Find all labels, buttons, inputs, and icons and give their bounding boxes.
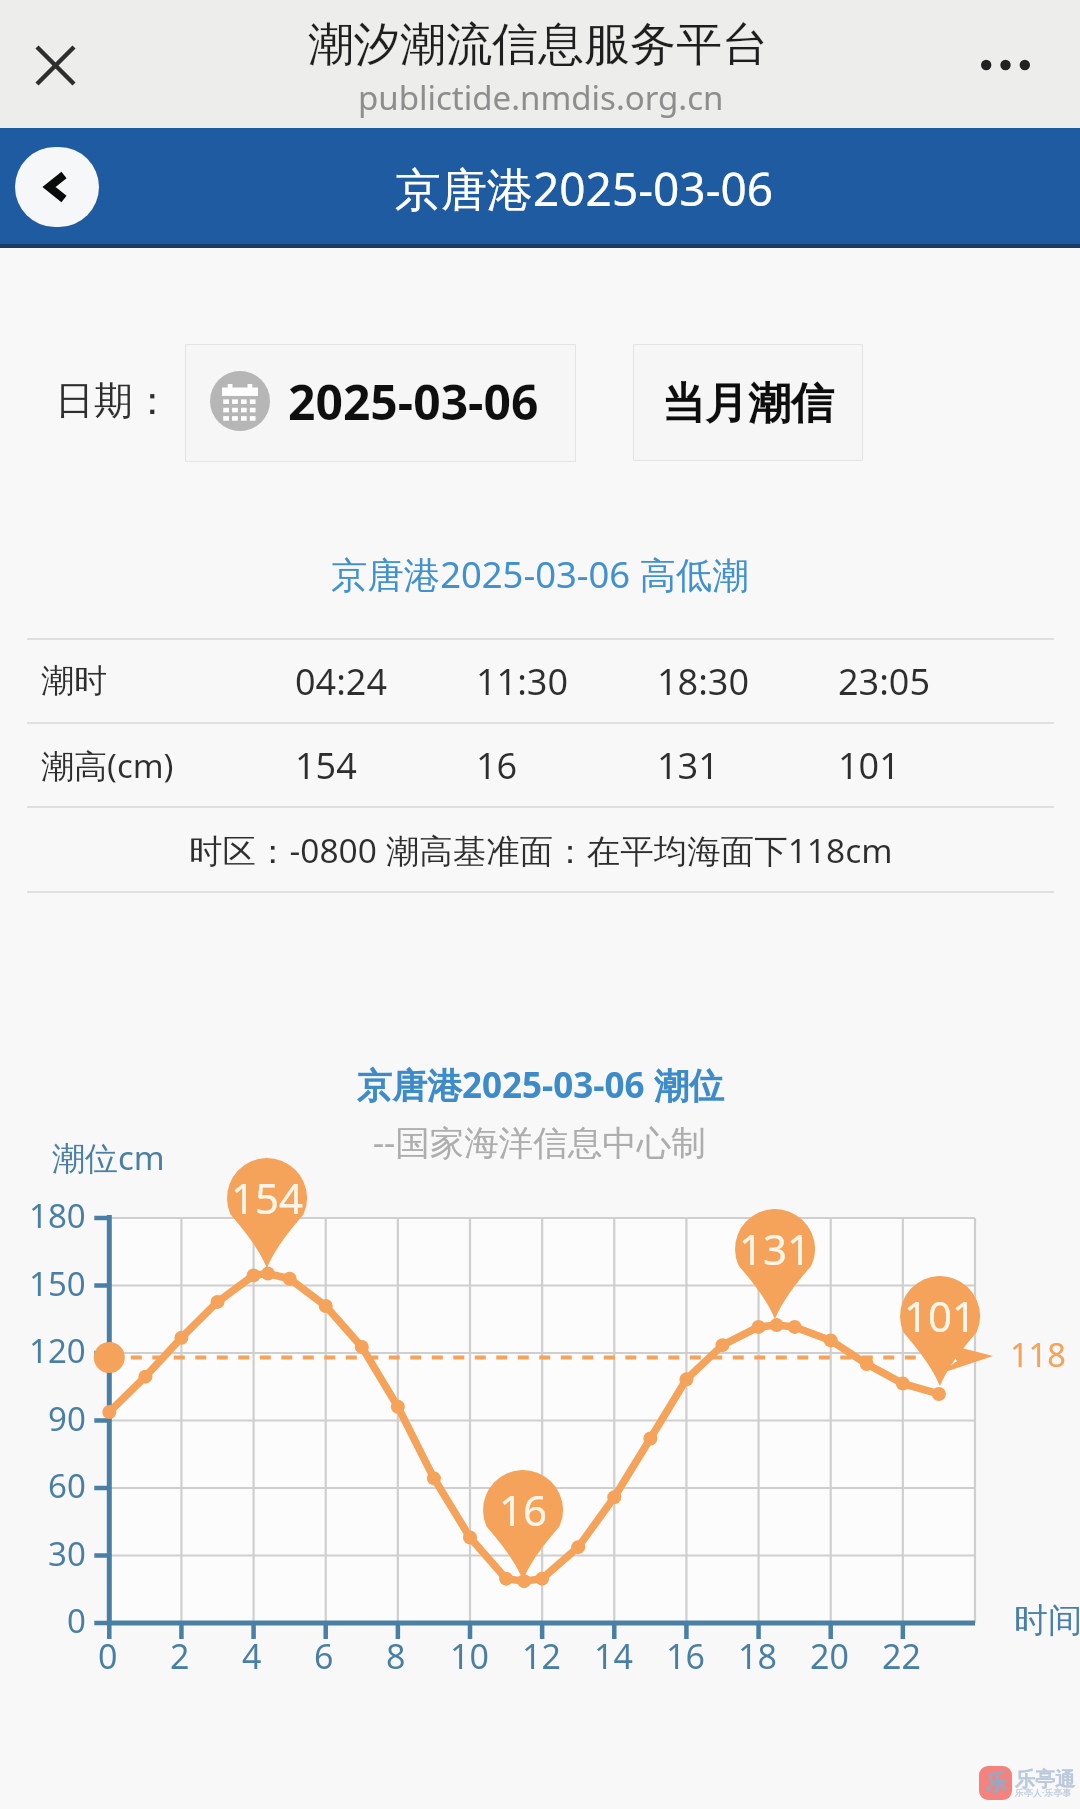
staticText: 150 xyxy=(29,1261,86,1306)
staticText: 18:30 xyxy=(657,657,750,706)
button[interactable]: 当月潮信 xyxy=(633,344,863,461)
staticText: 时间 xyxy=(1014,1599,1080,1642)
staticText: 20 xyxy=(810,1633,849,1679)
button[interactable]: Back xyxy=(15,147,99,227)
staticText: 潮时 xyxy=(41,660,107,702)
staticText: 2 xyxy=(170,1633,190,1679)
staticText: 16 xyxy=(476,741,518,790)
staticText: 14 xyxy=(594,1633,633,1679)
staticText: 11:30 xyxy=(476,657,569,706)
staticText: 23:05 xyxy=(838,657,931,706)
staticText: 10 xyxy=(450,1633,489,1679)
staticText: 6 xyxy=(314,1633,334,1679)
staticText: 乐 xyxy=(985,1769,1007,1797)
staticText: --国家海洋信息中心制 xyxy=(373,1118,706,1165)
staticText: publictide.nmdis.org.cn xyxy=(358,75,724,120)
button[interactable]: 2025-03-06 xyxy=(185,344,576,462)
staticText: 131 xyxy=(657,741,719,790)
staticText: 120 xyxy=(29,1328,86,1373)
button[interactable]: Close xyxy=(10,20,100,110)
staticText: 131 xyxy=(739,1220,812,1277)
staticText: 12 xyxy=(522,1633,561,1679)
staticText: 180 xyxy=(29,1193,86,1238)
staticText: 0 xyxy=(67,1598,86,1643)
button[interactable]: More options xyxy=(960,20,1050,110)
staticText: 京唐港2025-03-06 高低潮 xyxy=(331,549,749,599)
staticText: 4 xyxy=(242,1633,262,1679)
staticText: 101 xyxy=(838,741,900,790)
staticText: 时区：-0800 潮高基准面：在平均海面下118cm xyxy=(189,827,893,873)
staticText: 2025-03-06 xyxy=(288,369,539,434)
staticText: 154 xyxy=(295,741,357,790)
staticText: 101 xyxy=(904,1287,977,1344)
staticText: 154 xyxy=(231,1169,304,1226)
staticText: 118 xyxy=(1010,1332,1066,1376)
staticText: 潮位cm xyxy=(52,1135,165,1180)
staticText: 30 xyxy=(48,1531,86,1576)
staticText: 18 xyxy=(738,1633,777,1679)
staticText: 京唐港2025-03-06 xyxy=(395,157,774,220)
staticText: 16 xyxy=(666,1633,705,1679)
staticText: 90 xyxy=(48,1396,86,1441)
staticText: 当月潮信 xyxy=(662,377,834,431)
staticText: 潮高(cm) xyxy=(41,743,174,788)
staticText: 日期： xyxy=(55,376,172,425)
staticText: 乐亭人·乐亭事 xyxy=(1015,1786,1072,1798)
staticText: 22 xyxy=(882,1633,921,1679)
staticText: 京唐港2025-03-06 潮位 xyxy=(357,1061,724,1109)
staticText: 16 xyxy=(499,1481,548,1538)
staticText: 60 xyxy=(48,1463,86,1508)
staticText: 04:24 xyxy=(295,657,388,706)
staticText: 8 xyxy=(386,1633,406,1679)
staticText: 0 xyxy=(98,1633,118,1679)
staticText: 乐亭通 xyxy=(1015,1767,1075,1792)
staticText: 潮汐潮流信息服务平台 xyxy=(308,16,768,74)
